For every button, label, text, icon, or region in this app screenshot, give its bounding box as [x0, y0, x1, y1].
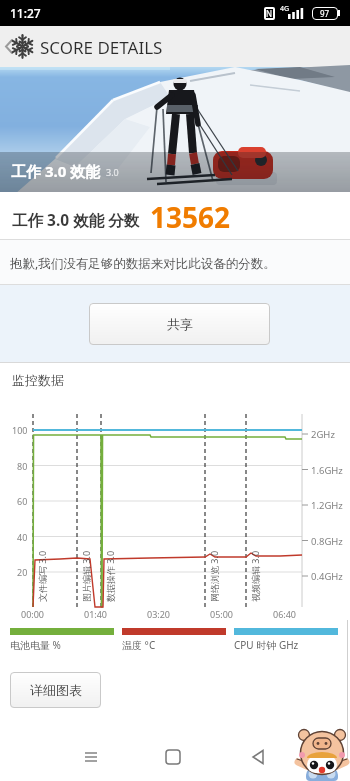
button[interactable]: SCORE DETAILS — [0, 26, 350, 67]
staticText: 100 — [12, 424, 28, 436]
staticText: 2GHz — [311, 428, 335, 441]
staticText: 11:27 — [10, 5, 41, 21]
staticText: 80 — [17, 460, 28, 472]
staticText: 00:00 — [21, 608, 45, 620]
button[interactable] — [79, 745, 103, 769]
staticText: 13562 — [150, 198, 231, 236]
staticText: 工作 3.0 效能 — [11, 161, 101, 181]
staticText: 文件编写 3.0 — [36, 550, 48, 602]
staticText: 0.4GHz — [311, 570, 343, 583]
staticText: 0.8GHz — [311, 535, 343, 548]
staticText: 1.2GHz — [311, 499, 343, 512]
staticText: 03:20 — [147, 608, 171, 620]
staticText: 图片编辑 3.0 — [80, 550, 92, 602]
button[interactable] — [246, 745, 270, 769]
staticText: 工作 3.0 效能 分数 — [12, 209, 140, 230]
staticText: 抱歉,我们没有足够的数据来对比此设备的分数。 — [10, 255, 276, 272]
button[interactable]: 工作 3.0 效能 — [0, 67, 350, 192]
button[interactable] — [161, 745, 185, 769]
staticText: 共享 — [167, 316, 193, 332]
staticText: 网络浏览 3.0 — [208, 550, 220, 602]
staticText: 05:00 — [210, 608, 234, 620]
staticText: 06:40 — [273, 608, 297, 620]
staticText: 97 — [320, 8, 330, 19]
button[interactable]: 详细图表 — [10, 672, 101, 708]
staticText: 1.6GHz — [311, 464, 343, 477]
staticText: 3.0 — [106, 166, 119, 178]
staticText: 01:40 — [84, 608, 108, 620]
staticText: 数据操作 3.0 — [104, 550, 116, 602]
staticText: 温度 °C — [122, 638, 156, 652]
staticText: 视频编辑 3.0 — [249, 550, 261, 602]
staticText: SCORE DETAILS — [40, 36, 163, 59]
button[interactable]: 共享 — [89, 303, 270, 345]
staticText: 20 — [17, 566, 28, 578]
staticText: N — [266, 8, 273, 19]
staticText: 电池电量 % — [10, 638, 61, 652]
staticText: 监控数据 — [12, 372, 64, 388]
staticText: 60 — [17, 495, 28, 507]
staticText: 40 — [17, 531, 28, 543]
staticText: CPU 时钟 GHz — [234, 638, 299, 652]
staticText: 详细图表 — [30, 682, 82, 698]
staticText: 4G — [280, 4, 290, 14]
